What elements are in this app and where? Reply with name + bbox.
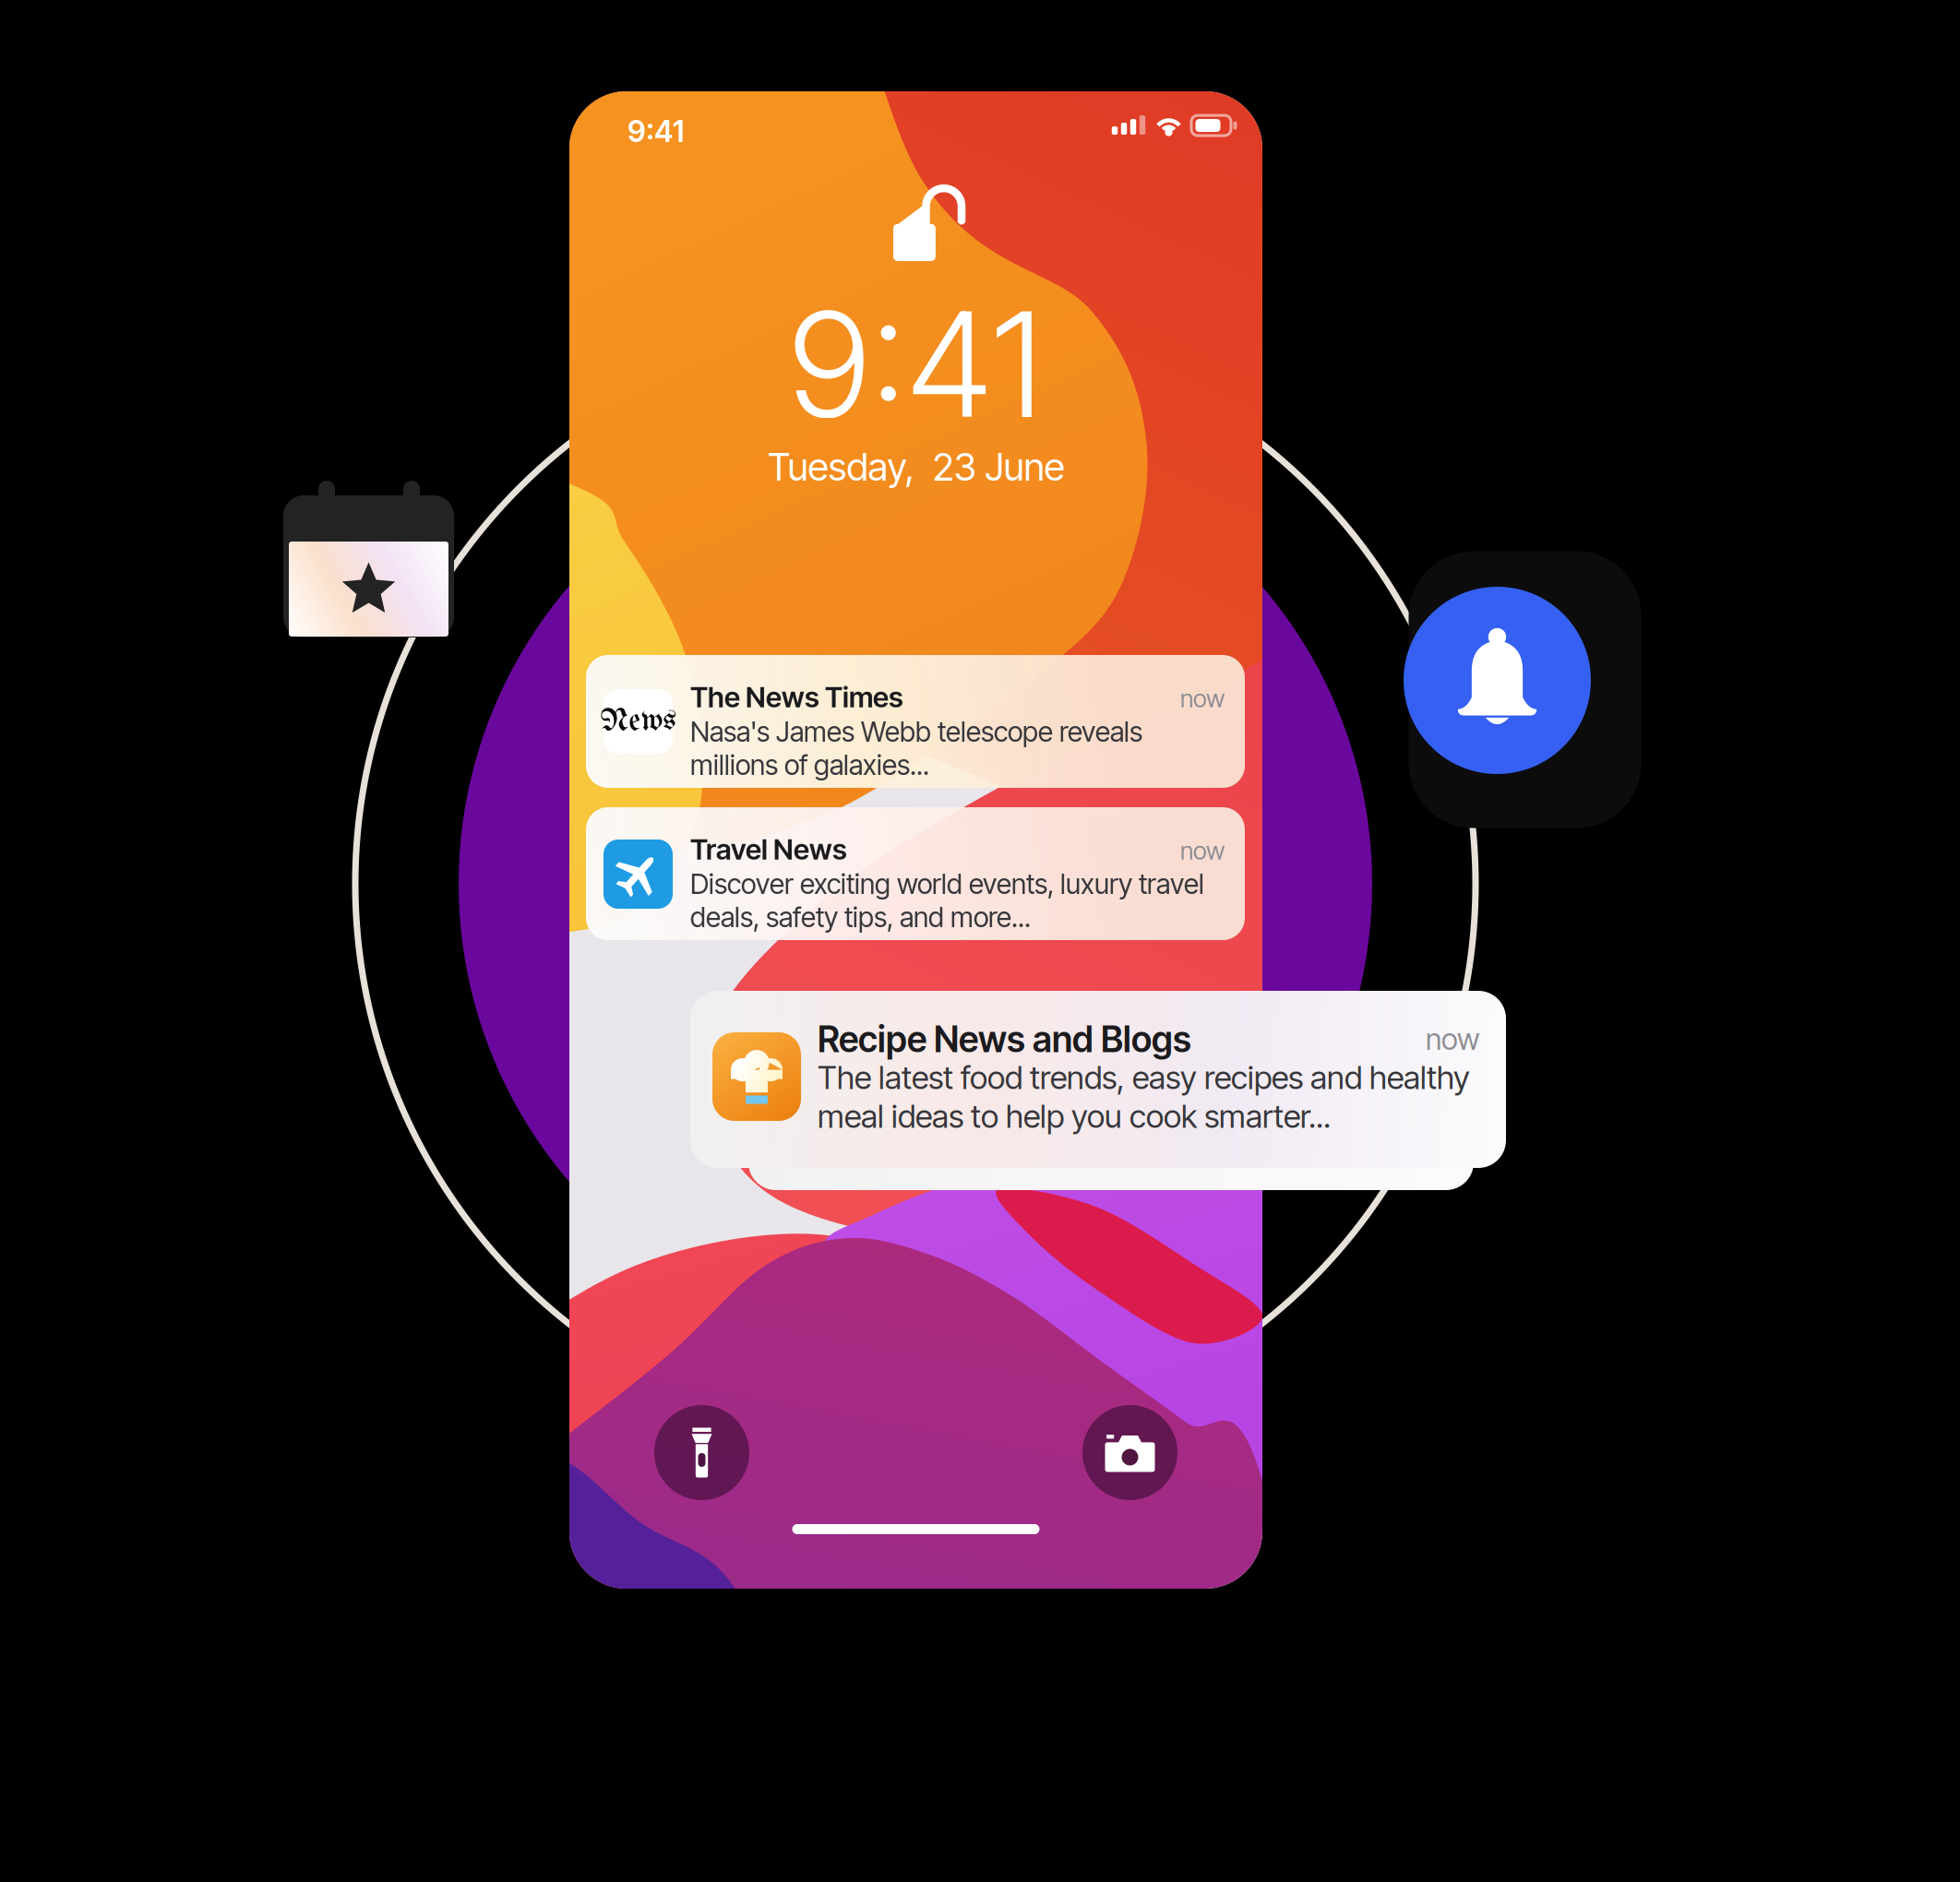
button[interactable]: Travel News [586, 807, 1245, 940]
staticText: Discover exciting world events, luxury t… [690, 867, 1204, 901]
button[interactable]: Flashlight [654, 1405, 749, 1500]
staticText: now [1426, 1021, 1480, 1057]
staticText: now [1180, 684, 1225, 713]
button[interactable]: Camera [1082, 1405, 1177, 1500]
staticText: Recipe News and Blogs [818, 1018, 1191, 1061]
button[interactable]: News [586, 655, 1245, 788]
staticText: 9:41 [788, 276, 1044, 451]
staticText: deals, safety tips, and more... [690, 900, 1031, 934]
staticText: 9:41 [627, 113, 684, 149]
staticText: Nasa's James Webb telescope reveals [690, 715, 1142, 748]
staticText: millions of galaxies... [690, 748, 929, 781]
button[interactable]: Calendar [283, 481, 454, 637]
staticText: Travel News [690, 832, 847, 866]
staticText: Tuesday, 23 June [767, 444, 1064, 490]
button[interactable]: Recipe News and Blogs [690, 991, 1506, 1168]
staticText: The News Times [690, 680, 903, 714]
staticText: The latest food trends, easy recipes and… [818, 1058, 1470, 1097]
staticText: meal ideas to help you cook smarter... [818, 1097, 1331, 1136]
staticText: now [1180, 836, 1225, 866]
button[interactable]: Notifications [1404, 587, 1591, 774]
staticText: News [600, 705, 676, 738]
